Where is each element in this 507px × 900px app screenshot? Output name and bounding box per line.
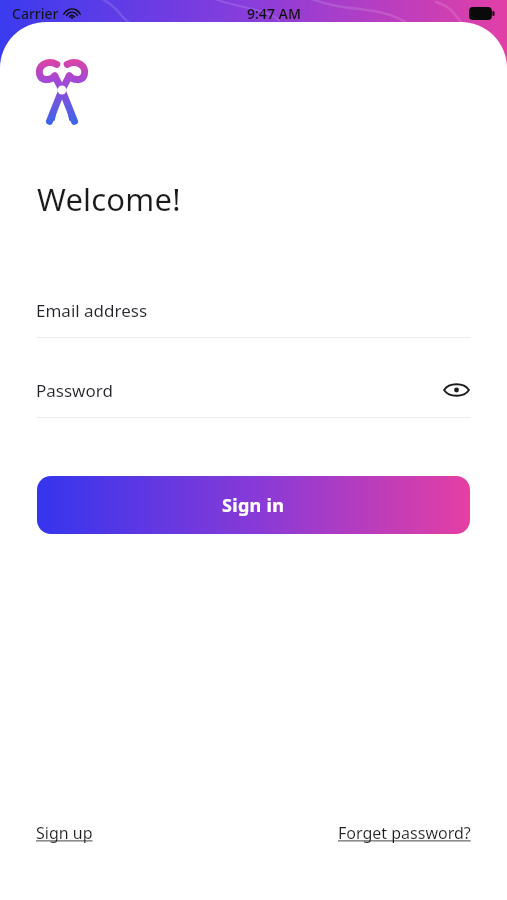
staticText: Welcome!	[37, 178, 181, 220]
staticText: 9:47 AM	[247, 4, 301, 23]
button[interactable]: Password	[36, 374, 471, 418]
staticText: Forget password?	[338, 822, 471, 844]
button[interactable]: Email address	[36, 294, 471, 338]
staticText: Sign up	[36, 822, 93, 844]
button[interactable]: Sign up	[36, 816, 93, 850]
staticText: Password	[36, 379, 113, 402]
staticText: Sign in	[222, 493, 285, 518]
button[interactable]: Forget password?	[338, 816, 471, 850]
staticText: Carrier	[12, 4, 59, 23]
button[interactable]: Show password	[441, 375, 471, 405]
button[interactable]: Sign in	[37, 476, 470, 534]
staticText: Email address	[36, 299, 148, 322]
